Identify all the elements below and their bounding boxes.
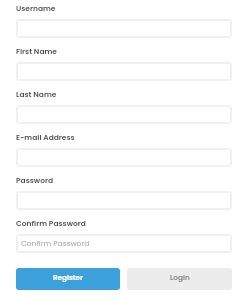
- button[interactable]: [16, 105, 232, 124]
- button[interactable]: [16, 19, 232, 38]
- button[interactable]: [16, 62, 232, 81]
- staticText: Login: [170, 272, 190, 282]
- button[interactable]: Confirm Password: [16, 234, 232, 253]
- staticText: Confirm Password: [16, 218, 86, 228]
- button[interactable]: [16, 191, 232, 210]
- button[interactable]: [16, 148, 232, 167]
- staticText: Confirm Password: [21, 238, 90, 248]
- button[interactable]: Register: [16, 268, 120, 290]
- staticText: Last Name: [16, 89, 57, 99]
- staticText: Username: [16, 3, 56, 13]
- button[interactable]: Login: [127, 268, 232, 290]
- staticText: Password: [16, 175, 54, 185]
- staticText: Register: [53, 272, 83, 282]
- staticText: E-mail Address: [16, 132, 75, 142]
- staticText: First Name: [16, 46, 57, 56]
